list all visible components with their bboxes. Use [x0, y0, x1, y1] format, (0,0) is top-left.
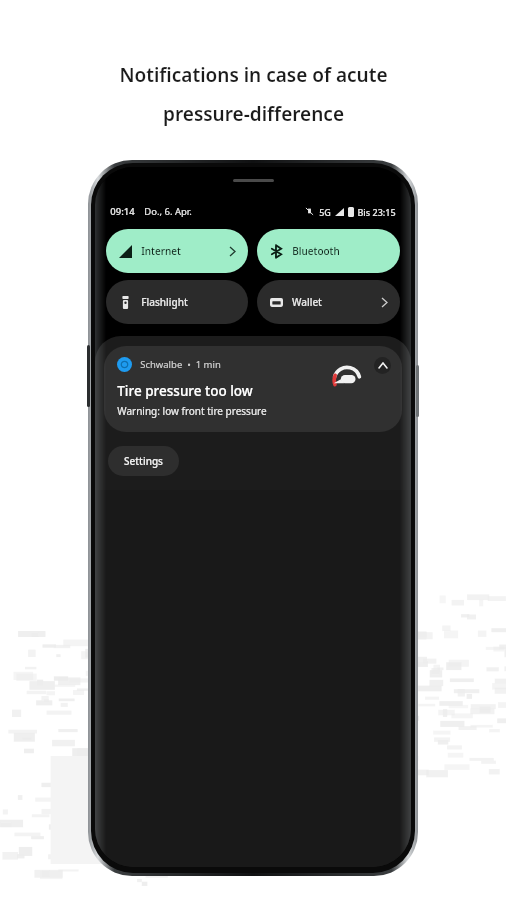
- button[interactable]: Wallet: [257, 280, 400, 324]
- staticText: Bis 23:15: [357, 206, 396, 218]
- staticText: 09:14: [110, 205, 135, 218]
- button[interactable]: Settings: [108, 446, 179, 476]
- button[interactable]: Bluetooth: [257, 229, 400, 273]
- staticText: Internet: [141, 244, 181, 258]
- staticText: Schwalbe • 1 min: [140, 358, 221, 371]
- button[interactable]: Collapse notification: [374, 357, 391, 374]
- staticText: 5G: [319, 206, 331, 218]
- staticText: Warning: low front tire pressure: [117, 404, 267, 418]
- staticText: Bluetooth: [292, 244, 340, 258]
- staticText: Do., 6. Apr.: [144, 205, 192, 218]
- button[interactable]: Flashlight: [106, 280, 248, 324]
- button[interactable]: Schwalbe • 1 min: [104, 346, 402, 432]
- staticText: Settings: [124, 454, 163, 468]
- staticText: pressure-difference: [163, 101, 344, 127]
- staticText: Wallet: [292, 295, 322, 309]
- staticText: Tire pressure too low: [117, 382, 253, 400]
- staticText: Notifications in case of acute: [119, 62, 388, 88]
- button[interactable]: Internet: [106, 229, 248, 273]
- staticText: Flashlight: [141, 295, 188, 309]
